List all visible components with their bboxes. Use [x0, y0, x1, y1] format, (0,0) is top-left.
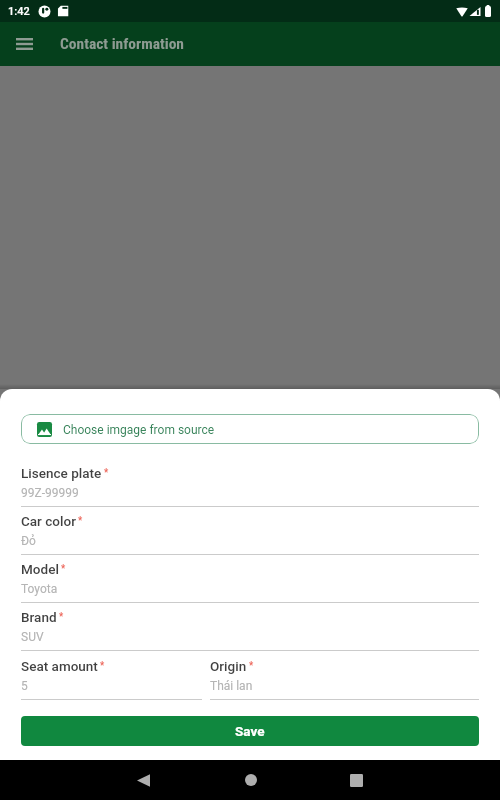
staticText: * [100, 660, 105, 672]
button[interactable]: Menu [0, 22, 48, 66]
staticText: Lisence plate [21, 465, 102, 481]
button[interactable]: Car color [21, 515, 479, 555]
button[interactable]: Save [21, 716, 479, 746]
staticText: Toyota [21, 582, 58, 596]
button[interactable]: Brand [21, 611, 479, 651]
staticText: Car color [21, 513, 76, 529]
staticText: * [59, 611, 64, 623]
staticText: Brand [21, 609, 57, 625]
button[interactable]: Back [120, 760, 167, 800]
staticText: SUV [21, 630, 44, 644]
staticText: Contact information [60, 35, 184, 53]
button[interactable]: Origin [210, 660, 479, 700]
staticText: Save [235, 723, 265, 739]
staticText: Origin [210, 658, 247, 674]
staticText: * [61, 563, 66, 575]
staticText: Thái lan [210, 679, 253, 693]
button[interactable]: Seat amount [21, 660, 202, 700]
staticText: 1:42 [8, 5, 30, 18]
button[interactable]: Lisence plate [21, 467, 479, 507]
button[interactable]: Home [227, 760, 274, 800]
staticText: Model [21, 561, 59, 577]
staticText: * [249, 660, 254, 672]
staticText: * [104, 467, 109, 479]
staticText: Choose imgage from source [63, 423, 215, 437]
staticText: Seat amount [21, 658, 98, 674]
staticText: Đỏ [21, 534, 36, 548]
button[interactable]: Choose imgage from source [21, 414, 479, 444]
button[interactable]: Recents [333, 760, 380, 800]
button[interactable]: Model [21, 563, 479, 603]
staticText: 99Z-99999 [21, 486, 79, 500]
staticText: 5 [21, 679, 28, 693]
staticText: * [78, 515, 83, 527]
